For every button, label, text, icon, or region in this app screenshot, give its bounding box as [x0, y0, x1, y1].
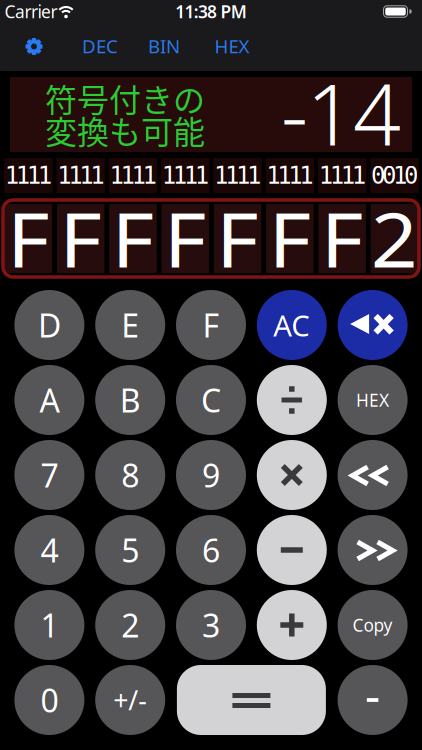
- button[interactable]: Multiply: [257, 440, 327, 510]
- button[interactable]: AC: [257, 290, 327, 360]
- button[interactable]: 1: [14, 590, 84, 660]
- staticText: HEX: [214, 34, 249, 58]
- staticText: F: [323, 189, 362, 288]
- staticText: 1111: [5, 162, 52, 189]
- button[interactable]: Add: [257, 590, 327, 660]
- staticText: 0: [40, 679, 58, 721]
- button[interactable]: Copy: [338, 590, 408, 660]
- button[interactable]: Shift right: [338, 515, 408, 585]
- staticText: Copy: [353, 613, 393, 636]
- button[interactable]: 0: [14, 665, 84, 735]
- staticText: 6: [202, 529, 220, 571]
- staticText: -14: [281, 57, 401, 169]
- staticText: A: [39, 379, 59, 421]
- staticText: AC: [273, 305, 310, 344]
- button[interactable]: Subtract: [257, 515, 327, 585]
- staticText: F: [202, 304, 219, 346]
- staticText: 1111: [162, 162, 209, 189]
- button[interactable]: C: [176, 365, 246, 435]
- button[interactable]: 9: [176, 440, 246, 510]
- staticText: 1111: [214, 162, 261, 189]
- button[interactable]: 4: [14, 515, 84, 585]
- staticText: 変換も可能: [45, 107, 205, 153]
- button[interactable]: 7: [14, 440, 84, 510]
- button[interactable]: Delete: [338, 290, 408, 360]
- button[interactable]: 6: [176, 515, 246, 585]
- staticText: F: [9, 189, 48, 288]
- button[interactable]: DEC: [82, 34, 118, 58]
- staticText: C: [201, 379, 221, 421]
- staticText: 9: [202, 454, 220, 496]
- staticText: Carrier: [4, 0, 57, 23]
- button[interactable]: F: [176, 290, 246, 360]
- button[interactable]: 8: [95, 440, 165, 510]
- button[interactable]: 5: [95, 515, 165, 585]
- staticText: F: [270, 189, 309, 288]
- button[interactable]: Divide: [257, 365, 327, 435]
- staticText: 7: [40, 454, 58, 496]
- staticText: 8: [121, 454, 139, 496]
- button[interactable]: Minus: [338, 665, 408, 735]
- staticText: 3: [202, 604, 220, 646]
- staticText: E: [121, 304, 139, 346]
- button[interactable]: 2: [95, 590, 165, 660]
- button[interactable]: 3: [176, 590, 246, 660]
- staticText: D: [38, 304, 61, 346]
- button[interactable]: Shift left: [338, 440, 408, 510]
- staticText: 1111: [319, 162, 366, 189]
- staticText: F: [166, 189, 205, 288]
- staticText: DEC: [82, 34, 118, 58]
- button[interactable]: BIN: [148, 34, 180, 58]
- staticText: 符号付きの: [45, 75, 205, 121]
- staticText: 1111: [109, 162, 156, 189]
- button[interactable]: HEX: [338, 365, 408, 435]
- staticText: F: [61, 189, 100, 288]
- button[interactable]: Settings: [25, 37, 43, 55]
- button[interactable]: D: [14, 290, 84, 360]
- button[interactable]: E: [95, 290, 165, 360]
- staticText: 1: [40, 604, 58, 646]
- button[interactable]: B: [95, 365, 165, 435]
- staticText: 2: [121, 604, 139, 646]
- staticText: BIN: [148, 34, 180, 58]
- staticText: 1111: [57, 162, 104, 189]
- staticText: B: [120, 379, 141, 421]
- staticText: 0010: [371, 162, 418, 189]
- staticText: +/-: [113, 682, 147, 718]
- button[interactable]: A: [14, 365, 84, 435]
- button[interactable]: Equals: [177, 665, 326, 735]
- staticText: HEX: [356, 388, 389, 411]
- button[interactable]: +/-: [95, 665, 165, 735]
- button[interactable]: HEX: [214, 34, 249, 58]
- staticText: 2: [373, 189, 416, 288]
- staticText: 1111: [266, 162, 313, 189]
- staticText: F: [218, 189, 257, 288]
- staticText: 5: [121, 529, 139, 571]
- staticText: F: [113, 189, 152, 288]
- staticText: 4: [40, 529, 58, 571]
- staticText: 11:38 PM: [175, 0, 247, 23]
